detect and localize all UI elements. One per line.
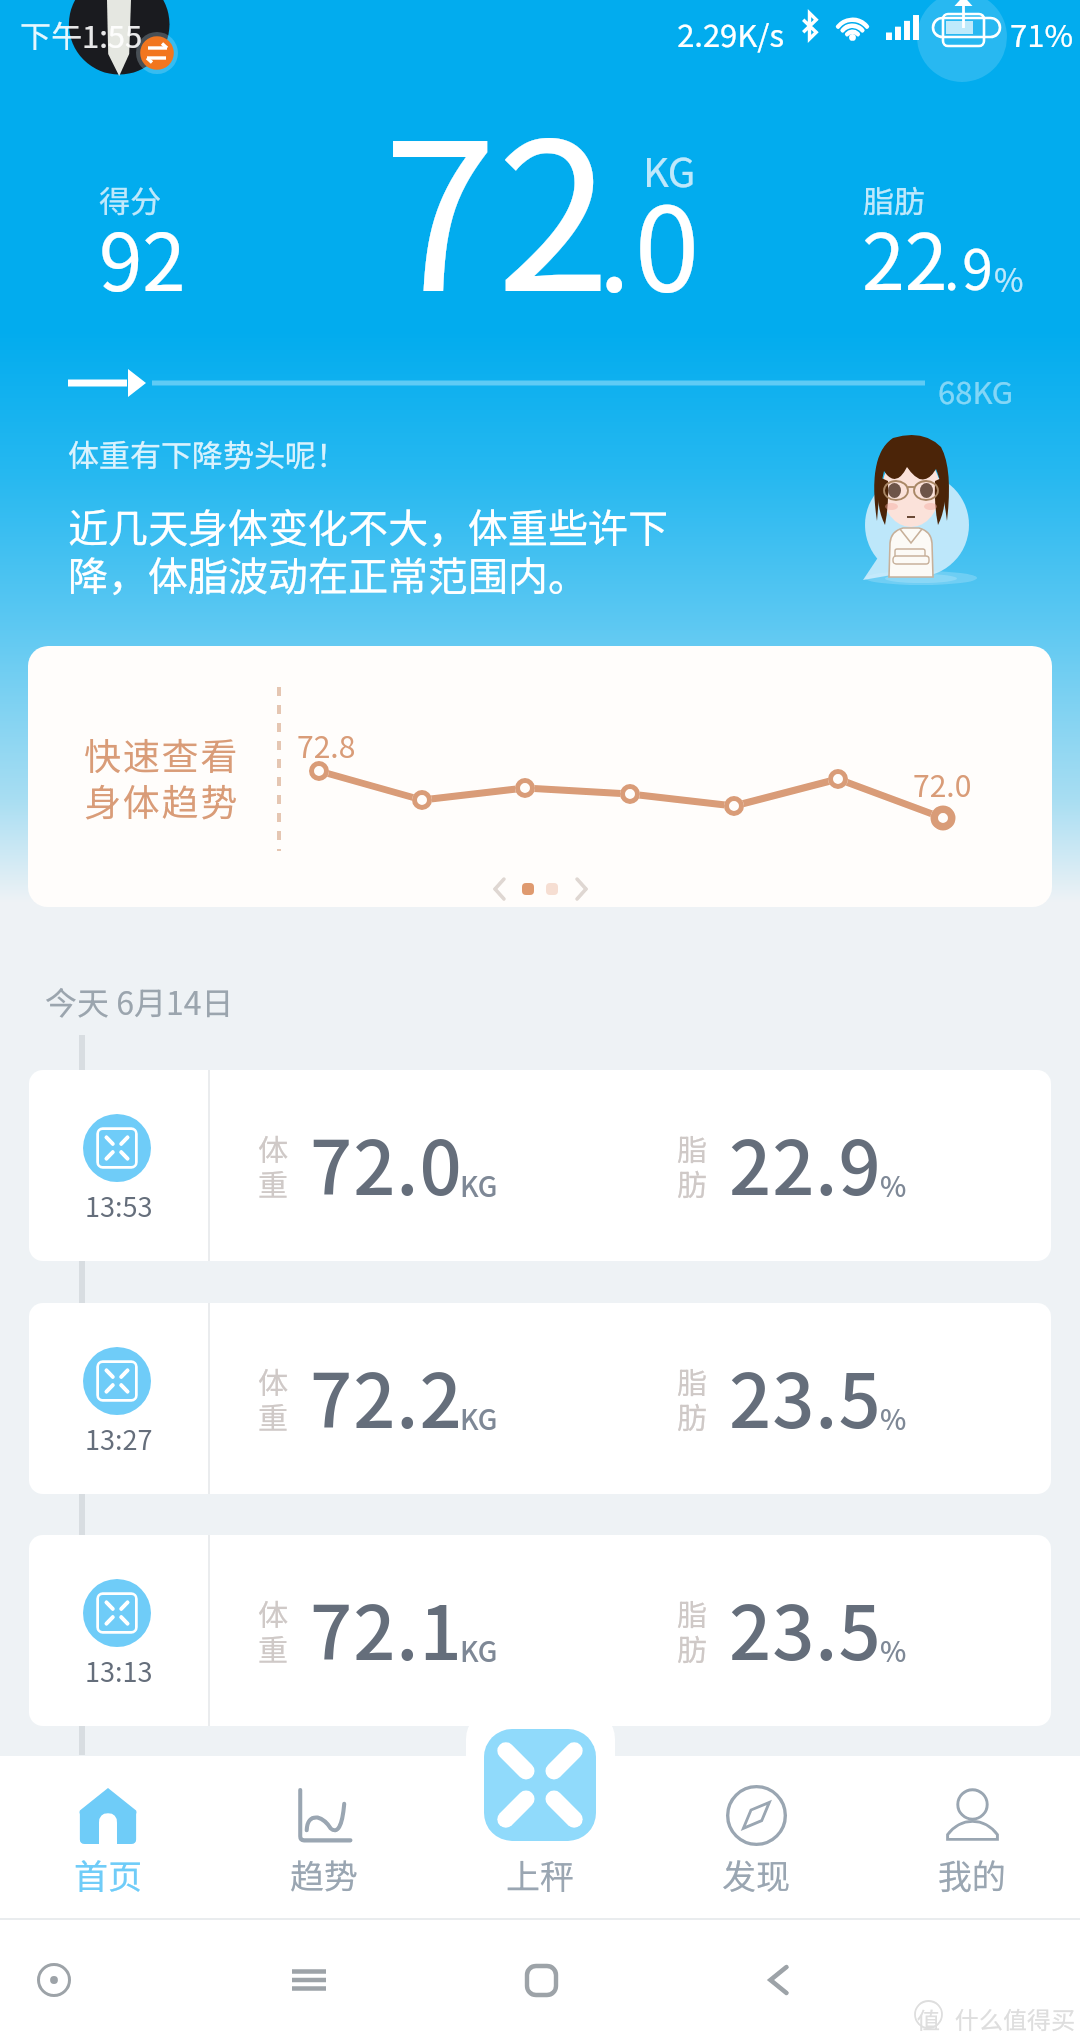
button[interactable]: Assistant (16, 1942, 92, 2018)
staticText: .0 (598, 155, 704, 324)
staticText: 体 重 (258, 1126, 288, 1205)
button[interactable]: 趋势 (216, 1756, 432, 1918)
staticText: 什么值得买 (955, 2001, 1075, 2036)
button[interactable]: 快速查看 身体趋势 (28, 646, 1052, 907)
staticText: 13:13 (85, 1651, 153, 1690)
button[interactable]: 13:13 (29, 1535, 1051, 1726)
button[interactable]: 13:27 (29, 1303, 1051, 1494)
button[interactable]: 发现 (648, 1756, 864, 1918)
staticText: KG (460, 1630, 498, 1671)
staticText: 23.5 (729, 1342, 882, 1449)
staticText: KG (643, 141, 696, 199)
staticText: .9 (944, 226, 996, 306)
button[interactable]: 上秤 (432, 1756, 648, 1918)
staticText: 72.2 (310, 1342, 463, 1449)
staticText: 值 (917, 2002, 940, 2035)
staticText: 72.1 (310, 1574, 463, 1681)
staticText: 今天 6月14日 (45, 978, 234, 1024)
staticText: 68KG (938, 368, 1014, 413)
staticText: 72 (383, 53, 611, 350)
other: Switch account (136, 32, 178, 74)
staticText: 92 (99, 201, 186, 314)
staticText: 体 重 (258, 1359, 288, 1438)
staticText: 2.29K/s (677, 11, 784, 56)
staticText: 71% (1010, 11, 1073, 56)
other: Profile (60, 0, 180, 84)
staticText: 72.0 (310, 1109, 463, 1216)
staticText: % (880, 1630, 907, 1671)
staticText: 发现 (722, 1850, 790, 1899)
button[interactable]: 我的 (864, 1756, 1080, 1918)
staticText: % (994, 255, 1024, 301)
staticText: 体 重 (258, 1591, 288, 1670)
staticText: % (880, 1165, 907, 1206)
staticText: 22.9 (729, 1109, 882, 1216)
button[interactable]: 首页 (0, 1756, 216, 1918)
staticText: 得分 (99, 177, 161, 222)
staticText: 我的 (938, 1850, 1006, 1899)
staticText: 近几天身体变化不大，体重些许下降，体脂波动在正常范围内。 (68, 497, 693, 603)
staticText: % (880, 1398, 907, 1439)
staticText: 脂肪 (863, 177, 925, 222)
staticText: KG (460, 1398, 498, 1439)
staticText: 脂 肪 (677, 1359, 707, 1438)
staticText: KG (460, 1165, 498, 1206)
staticText: 下午1:55 (20, 12, 143, 57)
staticText: 上秤 (506, 1850, 574, 1899)
staticText: 体重有下降势头呢！ (68, 431, 347, 476)
staticText: 13:53 (85, 1186, 153, 1225)
staticText: 脂 肪 (677, 1591, 707, 1670)
staticText: 72.0 (913, 762, 972, 805)
staticText: 13:27 (85, 1419, 153, 1458)
staticText: 首页 (74, 1850, 142, 1899)
staticText: 趋势 (290, 1850, 358, 1899)
button[interactable]: Back (741, 1942, 817, 2018)
button[interactable]: Menu (271, 1942, 347, 2018)
button[interactable]: 上秤 (484, 1729, 596, 1841)
staticText: 脂 肪 (677, 1126, 707, 1205)
staticText: 22 (862, 201, 948, 312)
staticText: 72.8 (297, 723, 356, 766)
staticText: 23.5 (729, 1574, 882, 1681)
staticText: 快速查看 身体趋势 (84, 727, 240, 827)
button[interactable]: 13:53 (29, 1070, 1051, 1261)
button[interactable]: Home (503, 1942, 579, 2018)
